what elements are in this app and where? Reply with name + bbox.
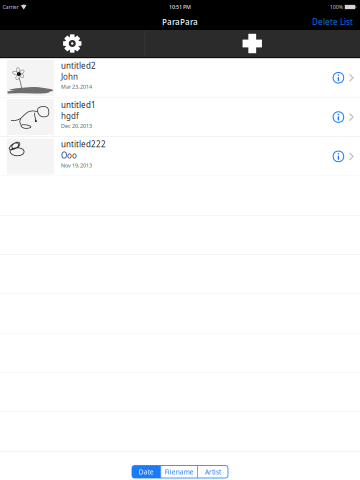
staticText: 100% (330, 3, 343, 11)
button[interactable]: untitled222 (0, 137, 360, 176)
button[interactable]: Filename (161, 466, 197, 478)
staticText: John (61, 71, 78, 82)
staticText: Filename (165, 467, 194, 476)
staticText: Nov 19, 2013 (61, 162, 92, 169)
button[interactable]: Settings (0, 30, 144, 57)
staticText: Ooo (61, 150, 77, 161)
staticText: untitled222 (61, 139, 106, 149)
staticText: Artist (205, 467, 221, 476)
button[interactable]: untitled2 (0, 58, 360, 97)
staticText: Date (139, 467, 154, 476)
button[interactable]: Add new (144, 30, 360, 57)
staticText: untitled1 (61, 100, 96, 110)
staticText: hgdf (61, 111, 79, 121)
staticText: Delete List (312, 17, 353, 27)
button[interactable]: Artist (198, 466, 228, 478)
button[interactable]: Date (132, 466, 161, 478)
button[interactable]: untitled1 (0, 98, 360, 136)
staticText: Carrier (2, 3, 18, 11)
staticText: Dec 20, 2013 (61, 122, 92, 130)
staticText: 10:51 PM (169, 3, 191, 11)
staticText: untitled2 (61, 60, 96, 71)
staticText: ParaPara (162, 17, 198, 27)
button[interactable]: Delete List (309, 14, 356, 30)
staticText: Mar 23, 2014 (61, 83, 92, 90)
